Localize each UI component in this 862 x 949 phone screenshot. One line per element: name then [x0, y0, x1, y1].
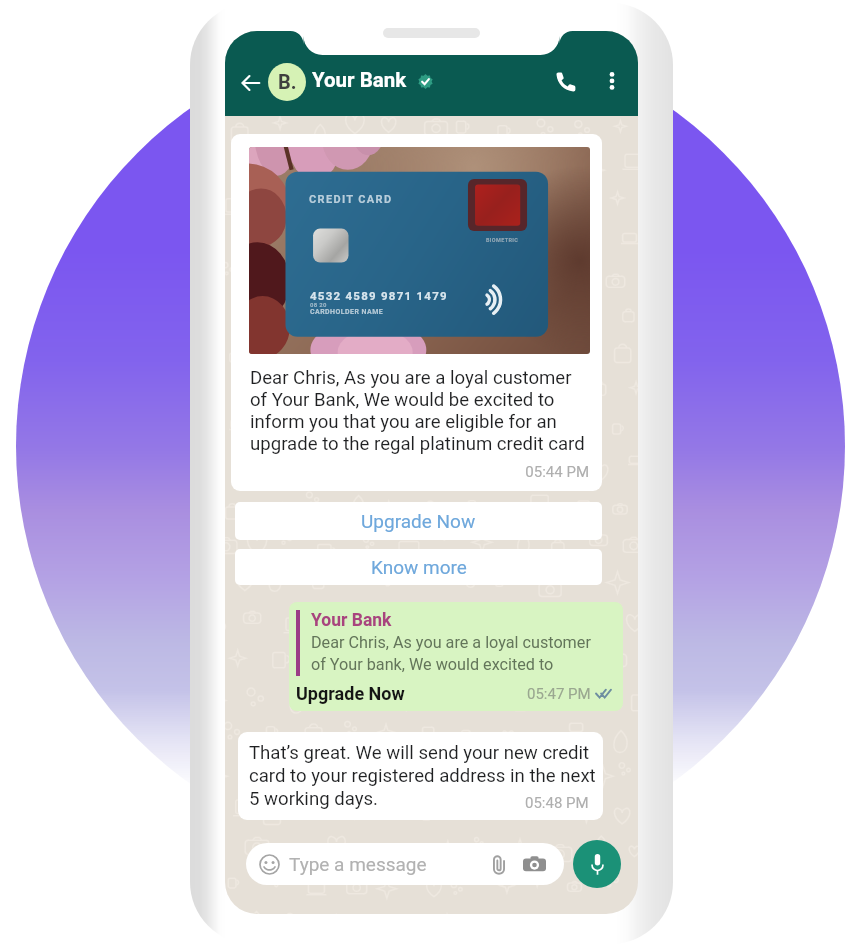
- button[interactable]: Type a message: [246, 843, 564, 885]
- staticText: Your Bank: [311, 610, 392, 631]
- staticText: Know more: [371, 556, 467, 578]
- button[interactable]: More options: [599, 69, 625, 95]
- button[interactable]: Upgrade Now: [235, 502, 602, 540]
- staticText: CARDHOLDER NAME: [310, 308, 384, 316]
- staticText: 05:44 PM: [249, 463, 589, 481]
- staticText: Dear Chris, As you are a loyal customer …: [311, 633, 599, 674]
- staticText: 05:48 PM: [525, 794, 589, 812]
- staticText: Upgrade Now: [296, 683, 405, 704]
- staticText: 4532 4589 9871 1479: [310, 289, 448, 302]
- button[interactable]: B.: [268, 63, 306, 101]
- staticText: 05:47 PM: [527, 685, 591, 703]
- button[interactable]: Call: [550, 66, 581, 97]
- staticText: Type a message: [289, 853, 427, 875]
- staticText: Your Bank: [312, 68, 407, 92]
- button[interactable]: Back: [234, 66, 267, 99]
- button[interactable]: Record voice message: [573, 840, 621, 888]
- staticText: That’s great. We will send your new cred…: [249, 742, 598, 809]
- button[interactable]: Know more: [235, 549, 602, 585]
- staticText: 08 20: [310, 301, 327, 308]
- staticText: B.: [278, 70, 297, 93]
- staticText: BIOMETRIC: [486, 237, 519, 243]
- staticText: Dear Chris, As you are a loyal customer …: [250, 367, 585, 455]
- staticText: CREDIT CARD: [309, 193, 393, 206]
- staticText: Upgrade Now: [361, 510, 476, 532]
